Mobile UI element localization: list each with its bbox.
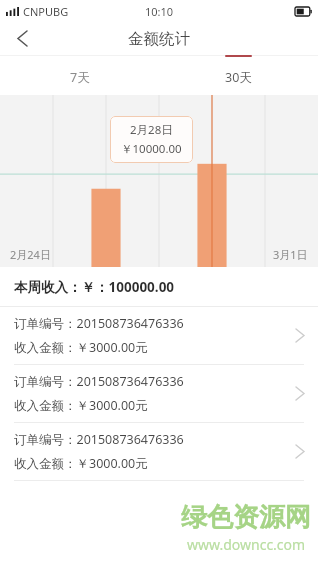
staticText: 收入金额：￥3000.00元 [14,397,148,414]
staticText: 订单编号：201508736476336 [14,373,184,390]
staticText: 30天 [225,69,252,86]
staticText: 本周收入：￥：100000.00 [14,278,175,296]
staticText: 2月24日 [10,247,51,262]
staticText: 订单编号：201508736476336 [14,431,184,448]
button[interactable]: 订单编号：201508736476336 [0,365,318,422]
button[interactable]: 订单编号：201508736476336 [0,423,318,480]
staticText: 10:10 [145,4,174,19]
button[interactable]: 7天 [0,55,159,95]
staticText: www.downcc.com [187,535,306,554]
staticText: 2月28日 [130,122,173,138]
staticText: ￥10000.00 [121,141,182,157]
staticText: 收入金额：￥3000.00元 [14,455,148,472]
staticText: 3月1日 [273,247,308,262]
staticText: 订单编号：201508736476336 [14,315,184,332]
staticText: 金额统计 [128,29,190,49]
button[interactable]: 30天 [159,55,318,95]
staticText: CNPUBG [23,4,69,19]
staticText: 绿色资源网 [181,501,311,534]
button[interactable]: 订单编号：201508736476336 [0,307,318,364]
staticText: 收入金额：￥3000.00元 [14,339,148,356]
staticText: 7天 [70,69,90,86]
button[interactable]: Back [0,22,44,55]
